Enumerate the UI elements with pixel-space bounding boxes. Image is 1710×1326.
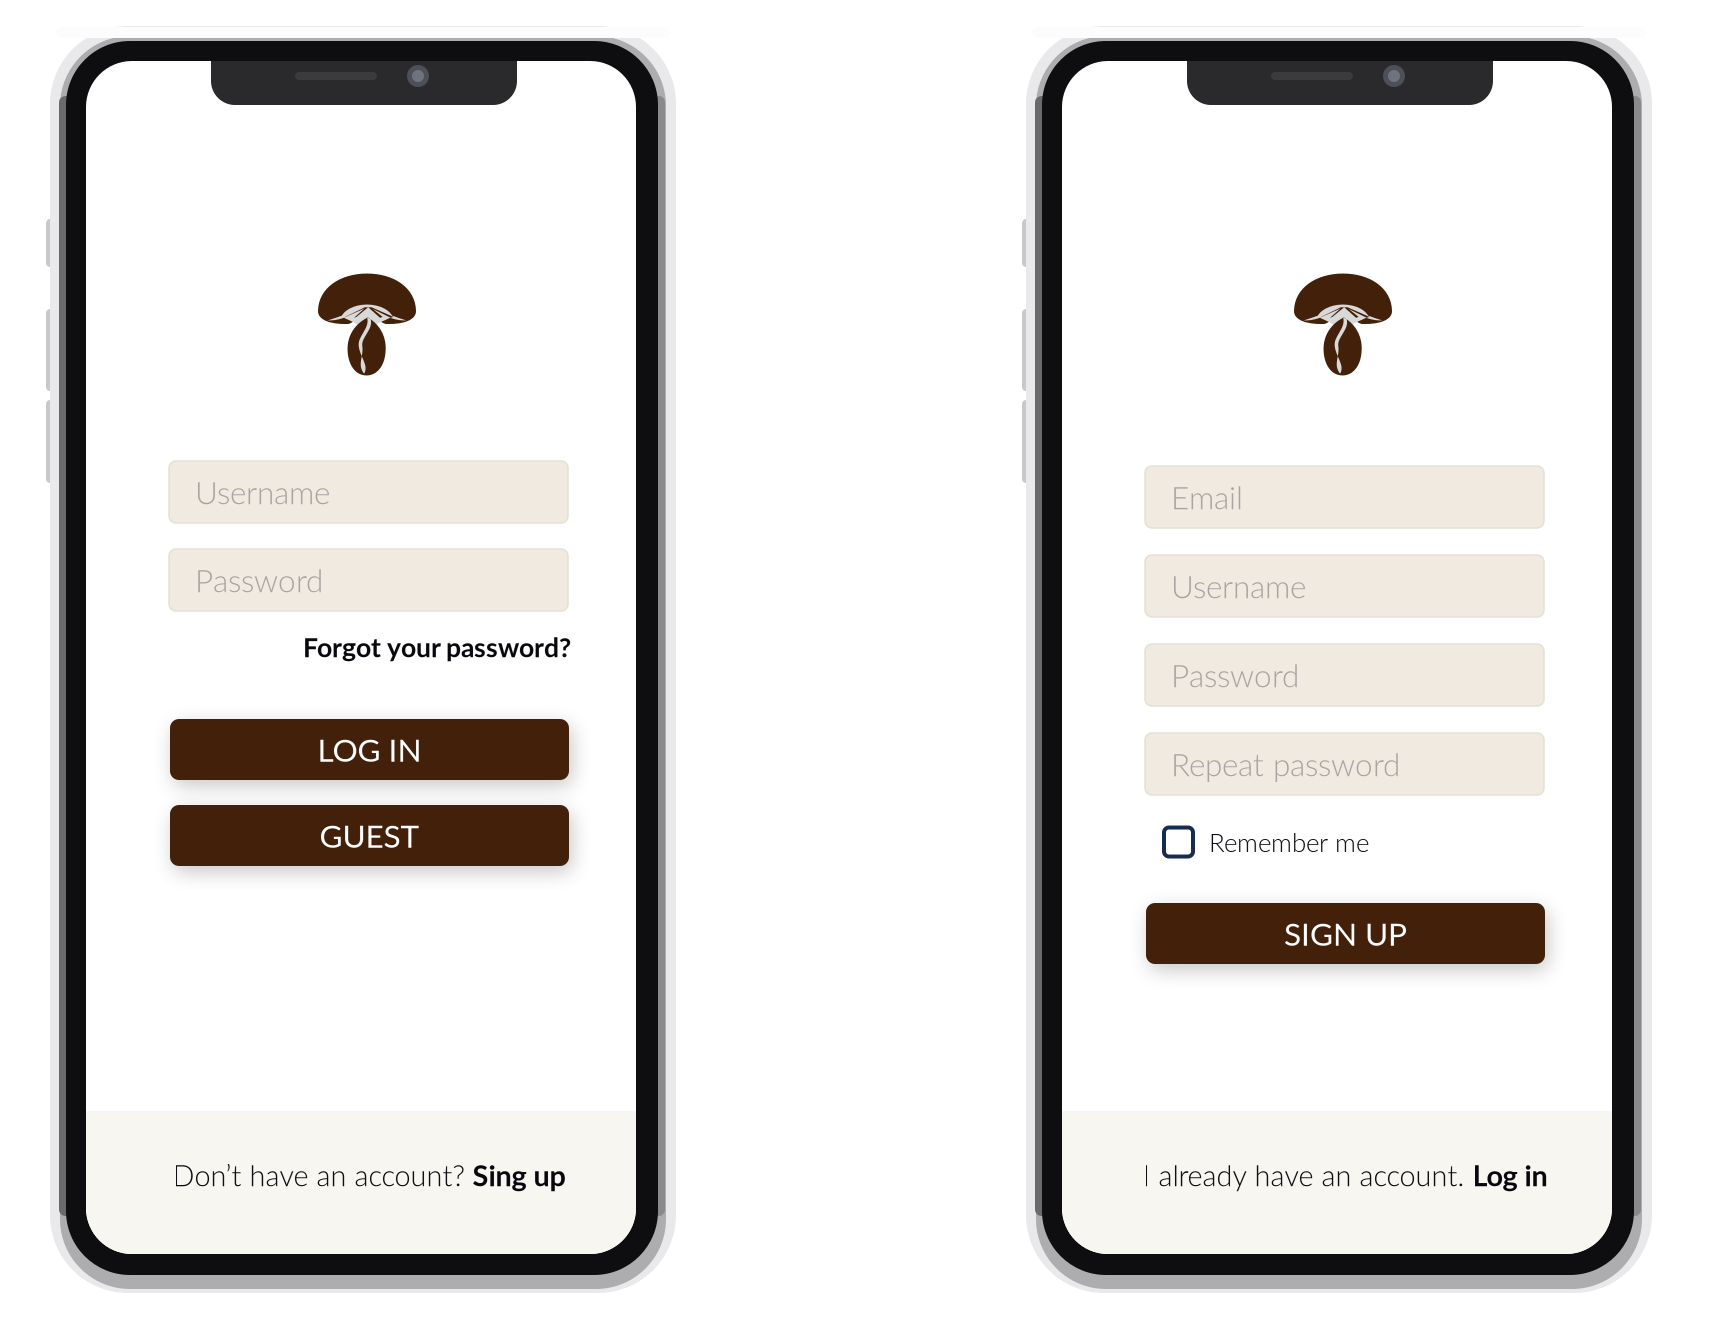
staticText: Remember me [1209, 826, 1369, 857]
button[interactable]: Don’t have an account? [94, 1157, 644, 1193]
button[interactable]: I already have an account. [1070, 1157, 1620, 1193]
staticText: Forgot your password? [303, 631, 571, 663]
staticText: Username [1171, 567, 1306, 605]
button[interactable]: LOG IN [170, 719, 569, 780]
button[interactable]: SIGN UP [1146, 903, 1545, 964]
button[interactable]: Forgot your password? [303, 631, 571, 663]
staticText: SIGN UP [1284, 914, 1407, 952]
staticText: Password [1171, 656, 1299, 694]
staticText: GUEST [319, 816, 419, 854]
staticText: Username [195, 473, 330, 511]
button[interactable]: Remember me [1164, 822, 1484, 862]
staticText: I already have an account. [1142, 1158, 1472, 1192]
staticText: Email [1171, 478, 1243, 516]
staticText: Don’t have an account? [172, 1158, 472, 1192]
staticText: Password [195, 561, 323, 599]
staticText: LOG IN [317, 730, 421, 768]
button[interactable]: GUEST [170, 805, 569, 866]
staticText: Log in [1472, 1158, 1547, 1192]
staticText: Repeat password [1171, 745, 1400, 783]
staticText: Sing up [472, 1158, 565, 1192]
